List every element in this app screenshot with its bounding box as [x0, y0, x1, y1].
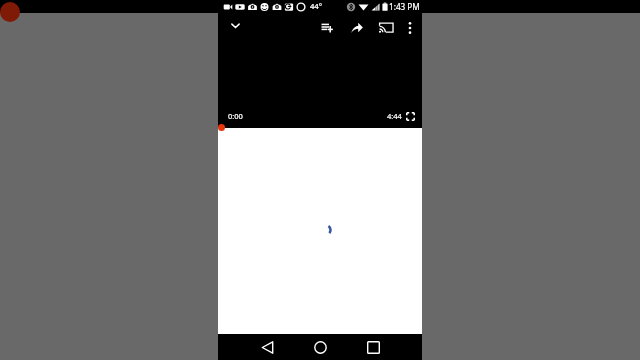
- staticText: 4:44: [387, 111, 402, 121]
- button[interactable]: Recents: [361, 335, 386, 360]
- staticText: 44°: [310, 1, 322, 11]
- staticText: 0:00: [228, 111, 243, 121]
- button[interactable]: Fullscreen: [400, 106, 421, 127]
- button[interactable]: Add to playlist: [315, 17, 341, 40]
- button[interactable]: Cast: [372, 15, 400, 40]
- staticText: 1:43 PM: [389, 1, 420, 12]
- button[interactable]: Home: [308, 335, 333, 360]
- button[interactable]: Share: [345, 16, 369, 39]
- button[interactable]: Back: [255, 335, 280, 360]
- button[interactable]: Collapse: [223, 14, 248, 38]
- button[interactable]: More options: [399, 16, 421, 40]
- button[interactable]: Video player: [218, 13, 422, 128]
